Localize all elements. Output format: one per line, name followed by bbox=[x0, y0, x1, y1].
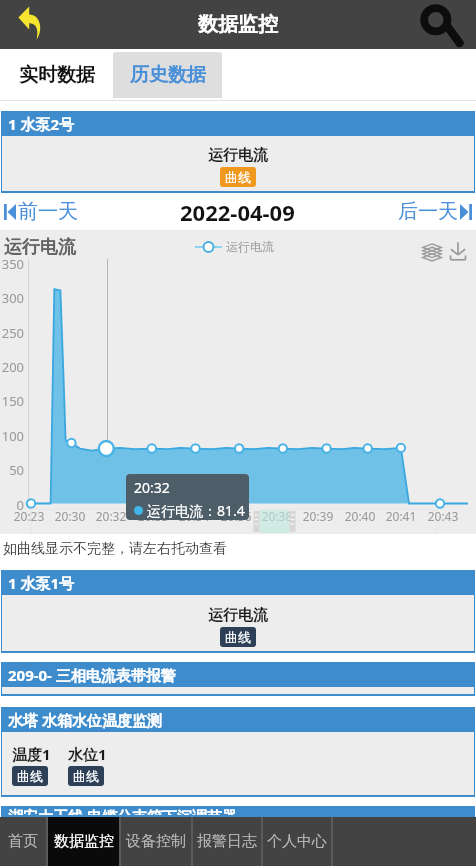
staticText: 水位1 bbox=[68, 744, 107, 764]
button[interactable]: 个人中心 bbox=[263, 817, 331, 866]
button[interactable]: 报警日志 bbox=[193, 817, 261, 866]
staticText: 运行电流 bbox=[208, 146, 268, 165]
button[interactable]: Search bbox=[416, 0, 476, 49]
staticText: 20:41 bbox=[384, 508, 418, 524]
staticText: 209-0- 三相电流表带报警 bbox=[8, 665, 176, 685]
button[interactable]: Back bbox=[8, 0, 60, 49]
staticText: 前一天 bbox=[18, 199, 78, 224]
staticText: 1 水泵1号 bbox=[8, 573, 75, 593]
staticText: 后一天 bbox=[398, 199, 458, 224]
button[interactable]: 曲线 bbox=[12, 766, 48, 786]
staticText: 首页 bbox=[8, 832, 38, 851]
staticText: 350 bbox=[0, 255, 24, 273]
staticText: 300 bbox=[0, 289, 24, 307]
staticText: 20:40 bbox=[343, 508, 377, 524]
staticText: 设备控制 bbox=[126, 832, 186, 851]
staticText: 20:23 bbox=[12, 508, 46, 524]
button[interactable]: 曲线 bbox=[68, 766, 104, 786]
staticText: 150 bbox=[0, 392, 24, 410]
staticText: 200 bbox=[0, 358, 24, 376]
staticText: 20:32 bbox=[134, 478, 170, 497]
staticText: 250 bbox=[0, 324, 24, 342]
staticText: 20:32 bbox=[94, 508, 128, 524]
staticText: 运行电流：81.4 bbox=[147, 501, 245, 520]
staticText: 数据监控 bbox=[54, 832, 114, 851]
button[interactable]: 首页 bbox=[0, 817, 46, 866]
staticText: 实时数据 bbox=[19, 63, 95, 87]
button[interactable]: 1 水泵2号 bbox=[2, 111, 474, 136]
staticText: 曲线 bbox=[17, 768, 43, 784]
button[interactable]: 数据监控 bbox=[48, 817, 119, 866]
staticText: 湖安大工线 电缆分支箱下沉调节器 bbox=[8, 806, 237, 815]
button[interactable]: 实时数据 bbox=[0, 52, 113, 98]
staticText: 曲线 bbox=[225, 169, 251, 185]
staticText: 温度1 bbox=[12, 744, 51, 764]
button[interactable]: 前一天 bbox=[0, 199, 78, 224]
staticText: 20:43 bbox=[426, 508, 460, 524]
staticText: 20:33 bbox=[136, 508, 170, 524]
button[interactable]: 曲线 bbox=[220, 627, 256, 647]
staticText: 20:38 bbox=[260, 508, 294, 524]
button[interactable]: 历史数据 bbox=[113, 52, 222, 98]
staticText: 报警日志 bbox=[197, 832, 257, 851]
staticText: 100 bbox=[0, 427, 24, 445]
button[interactable]: Download bbox=[447, 240, 469, 262]
staticText: 20:39 bbox=[301, 508, 335, 524]
staticText: 个人中心 bbox=[267, 832, 327, 851]
staticText: 历史数据 bbox=[130, 63, 206, 87]
staticText: 0 bbox=[0, 496, 24, 514]
staticText: 2022-04-09 bbox=[180, 197, 295, 227]
button[interactable]: 水塔 水箱水位温度监测 bbox=[2, 707, 474, 732]
button[interactable]: 1 水泵1号 bbox=[2, 570, 474, 595]
staticText: 如曲线显示不完整，请左右托动查看 bbox=[3, 540, 227, 558]
staticText: 20:30 bbox=[53, 508, 87, 524]
staticText: 曲线 bbox=[73, 768, 99, 784]
button[interactable]: 设备控制 bbox=[121, 817, 191, 866]
button[interactable]: 曲线 bbox=[220, 167, 256, 187]
staticText: 曲线 bbox=[225, 629, 251, 645]
staticText: 20:36 bbox=[219, 508, 253, 524]
staticText: 运行电流 bbox=[226, 239, 274, 254]
staticText: 50 bbox=[0, 461, 24, 479]
button[interactable]: Layers bbox=[421, 240, 443, 262]
staticText: 1 水泵2号 bbox=[8, 114, 75, 134]
staticText: 20:34 bbox=[177, 508, 211, 524]
staticText: 水塔 水箱水位温度监测 bbox=[8, 710, 162, 730]
button[interactable]: 湖安大工线 电缆分支箱下沉调节器 bbox=[2, 806, 474, 815]
staticText: 运行电流 bbox=[4, 236, 76, 259]
staticText: 数据监控 bbox=[198, 12, 278, 37]
button[interactable]: 后一天 bbox=[398, 199, 476, 224]
staticText: 运行电流 bbox=[208, 606, 268, 625]
button[interactable]: 209-0- 三相电流表带报警 bbox=[2, 662, 474, 687]
